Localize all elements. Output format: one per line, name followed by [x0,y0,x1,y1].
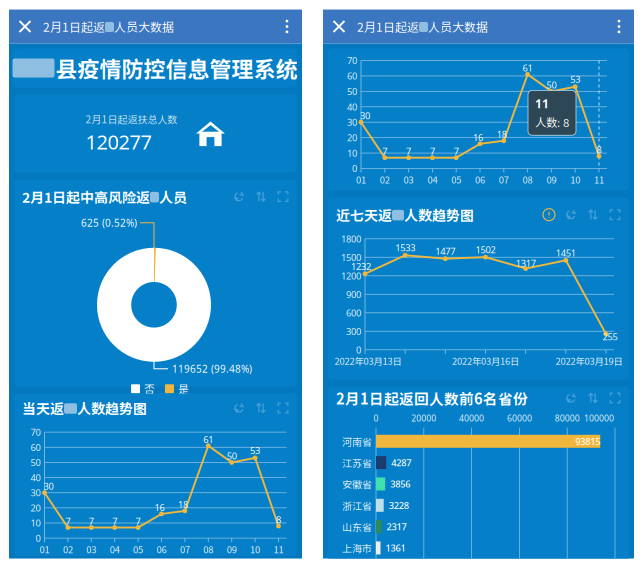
staticText: 07 [499,173,509,186]
staticText: 1533 [395,241,415,254]
button[interactable]: Sort [587,392,599,404]
button[interactable]: Fullscreen [277,402,289,414]
staticText: 40 [347,100,357,113]
staticText: 600 [346,306,361,319]
staticText: 0 [352,162,357,175]
staticText: 1361 [385,542,405,554]
staticText: 2月1日起返 [357,18,419,35]
staticText: 53 [570,73,580,86]
staticText: 10 [30,517,40,529]
staticText: 1500 [341,251,361,264]
staticText: 06 [156,542,166,556]
staticText: 120277 [85,128,151,155]
button[interactable]: More options [604,9,634,43]
staticText: 60 [347,70,357,82]
button[interactable]: Close [9,9,41,43]
staticText: 否 [144,381,155,396]
staticText: 7 [89,515,94,527]
staticText: 40 [30,471,40,484]
staticText: 03 [86,542,96,556]
staticText: 3856 [390,478,410,490]
staticText: 30 [347,116,357,129]
staticText: 2月1日起返回人数前6名省份 [336,387,528,409]
staticText: 93815 [575,435,600,448]
staticText: 255 [602,330,617,343]
staticText: 04 [110,542,120,556]
button[interactable]: Sort [587,209,599,221]
button[interactable]: Refresh [565,209,577,221]
staticText: 02 [380,173,390,186]
staticText: 4287 [391,456,411,469]
button[interactable]: Fullscreen [609,209,621,221]
button[interactable]: Info [543,209,555,221]
staticText: 1477 [435,245,455,257]
staticText: 人数趋势图 [77,398,147,418]
button[interactable]: Refresh [233,402,245,414]
staticText: 县疫情防控信息管理系统 [55,52,297,84]
button[interactable]: Fullscreen [609,392,621,404]
staticText: 09 [546,173,556,186]
staticText: 40000 [459,412,484,424]
staticText: 09 [227,542,237,556]
staticText: 30 [43,480,53,493]
staticText: 53 [250,444,260,457]
button[interactable]: Refresh [565,392,577,404]
staticText: 04 [427,173,437,186]
staticText: 100000 [584,412,614,424]
staticText: 60 [30,441,40,454]
staticText: 61 [523,61,533,74]
staticText: 浙江省 [342,498,372,512]
staticText: 7 [454,145,459,157]
staticText: 7 [430,145,435,157]
staticText: 05 [133,542,143,556]
staticText: 1800 [341,232,361,245]
staticText: 近七天返 [336,204,392,225]
staticText: 河南省 [342,434,372,448]
staticText: 50 [30,456,40,469]
button[interactable]: Sort [255,191,267,203]
staticText: 11 [535,95,549,112]
staticText: 1451 [556,246,576,259]
staticText: 50 [347,85,357,98]
staticText: 30 [30,486,40,499]
staticText: 2月1日起返扶总人数 [85,112,177,126]
staticText: 10 [347,147,357,159]
staticText: 2022年03月13日 [334,354,401,367]
button[interactable]: Sort [255,402,267,414]
staticText: 8 [596,143,601,156]
staticText: 0 [35,532,40,544]
staticText: 20 [30,501,40,514]
staticText: 05 [451,173,461,186]
staticText: 7 [65,515,70,527]
button[interactable]: More options [272,9,302,43]
staticText: 1317 [516,257,536,269]
staticText: 18 [178,498,188,511]
staticText: 10 [570,173,580,186]
staticText: 人员 [159,186,187,207]
staticText: 8 [276,513,281,526]
staticText: 2月1日起返 [43,18,105,35]
staticText: 80000 [555,412,580,424]
staticText: 16 [473,131,483,144]
staticText: 2317 [386,520,406,533]
staticText: 50 [546,78,556,91]
staticText: 300 [346,325,361,338]
staticText: 2022年03月19日 [555,354,622,367]
staticText: 02 [63,542,73,556]
staticText: 07 [180,542,190,556]
staticText: 0 [356,343,361,356]
staticText: 20000 [411,412,436,424]
staticText: 20 [347,131,357,144]
button[interactable]: Close [323,9,355,43]
staticText: 900 [346,288,361,301]
staticText: 625 (0.52%) [81,216,137,230]
staticText: 2022年03月16日 [452,354,519,367]
staticText: 人数: 8 [535,114,569,130]
staticText: 01 [39,542,49,556]
button[interactable]: Refresh [233,191,245,203]
staticText: 08 [203,542,213,556]
staticText: 10 [250,542,260,556]
staticText: 人员大数据 [114,18,174,35]
staticText: 61 [203,433,213,446]
button[interactable]: Fullscreen [277,191,289,203]
